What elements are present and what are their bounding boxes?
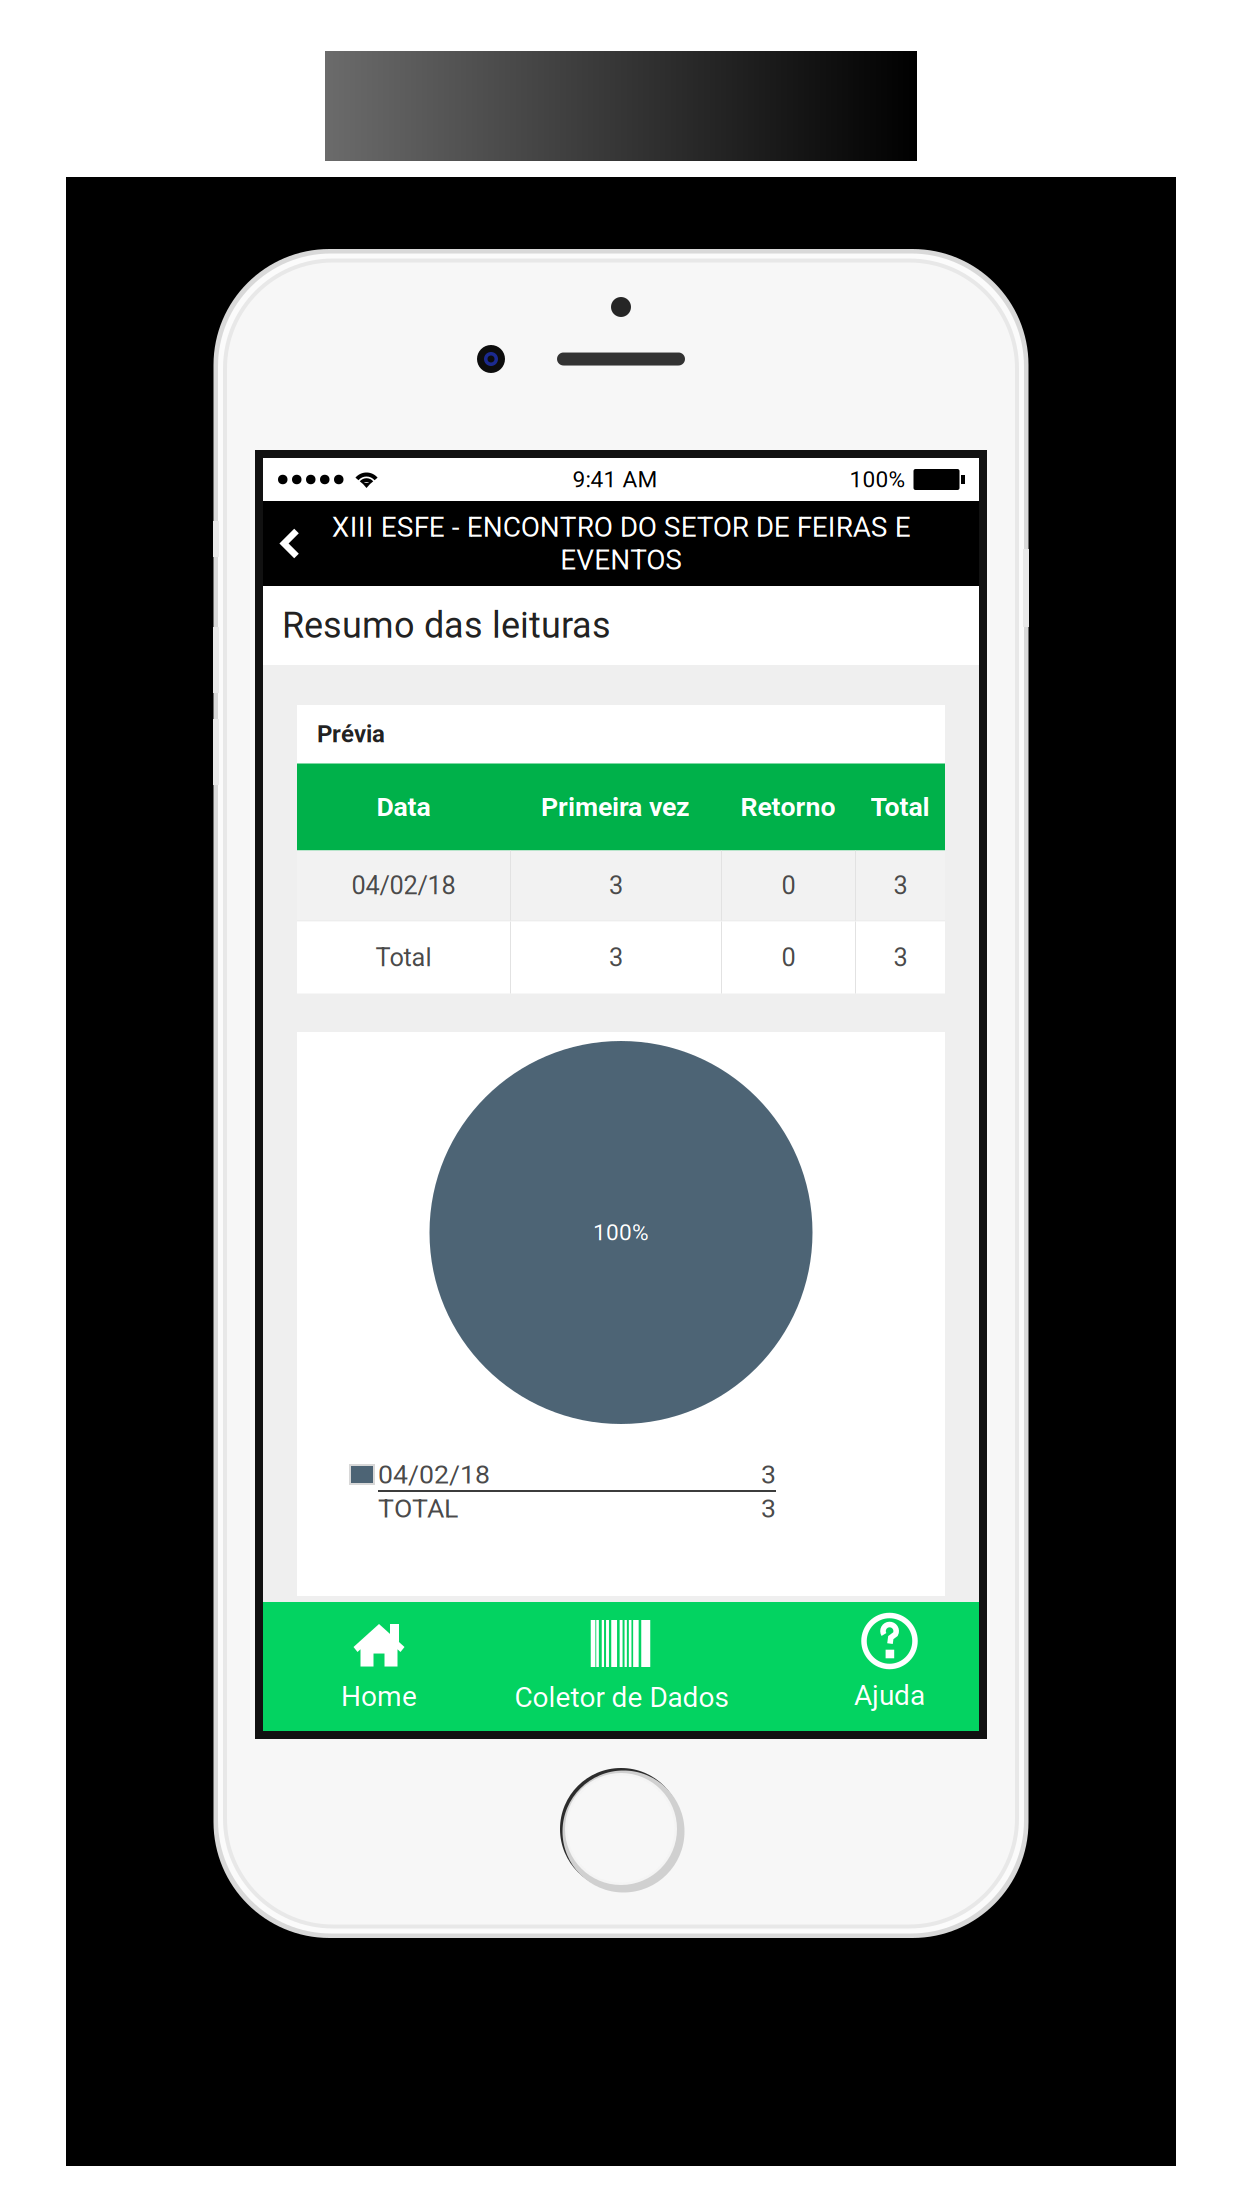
staticText: Ajuda xyxy=(854,1679,925,1712)
staticText: Total xyxy=(375,943,431,972)
staticText: 3 xyxy=(761,1493,776,1524)
staticText: 3 xyxy=(761,1459,776,1490)
staticText: 3 xyxy=(609,871,623,900)
staticText: 9:41 AM xyxy=(572,466,657,493)
button[interactable]: Coletor de Dados xyxy=(495,1602,748,1731)
staticText: 0 xyxy=(781,943,795,972)
staticText: Retorno xyxy=(740,791,835,823)
staticText: 3 xyxy=(609,943,623,972)
button[interactable]: Ajuda xyxy=(774,1602,1005,1731)
staticText: Prévia xyxy=(317,720,385,748)
staticText: 3 xyxy=(893,871,907,900)
staticText: Home xyxy=(341,1680,417,1713)
staticText: TOTAL xyxy=(378,1493,458,1524)
staticText: Resumo das leituras xyxy=(282,604,611,647)
staticText: Primeira vez xyxy=(541,791,690,823)
staticText: 0 xyxy=(781,871,795,900)
staticText: Total xyxy=(870,791,929,823)
staticText: 04/02/18 xyxy=(351,871,455,900)
staticText: Data xyxy=(376,791,430,823)
staticText: 100% xyxy=(593,1219,649,1246)
staticText: 04/02/18 xyxy=(378,1459,490,1490)
staticText: 100% xyxy=(849,466,905,493)
button[interactable]: Back xyxy=(263,500,317,586)
staticText: XIII ESFE - ENCONTRO DO SETOR DE FEIRAS … xyxy=(331,511,910,576)
button[interactable]: Home xyxy=(263,1602,495,1731)
staticText: 3 xyxy=(893,943,907,972)
staticText: Coletor de Dados xyxy=(514,1681,728,1714)
